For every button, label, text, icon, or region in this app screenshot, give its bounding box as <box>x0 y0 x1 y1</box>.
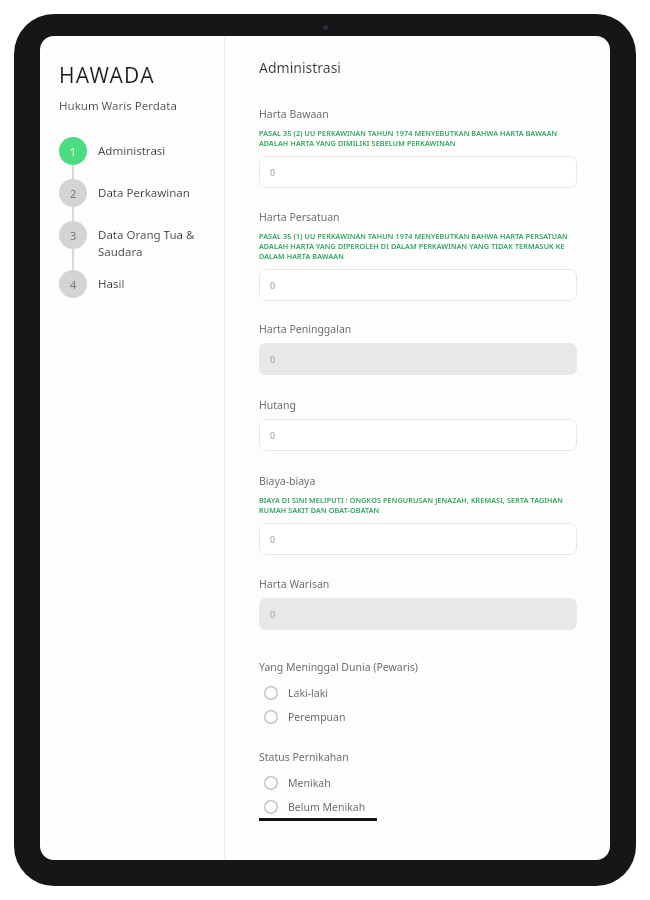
button[interactable]: Belum Menikah <box>259 800 577 814</box>
staticText: PASAL 35 (2) UU PERKAWINAN TAHUN 1974 ME… <box>259 128 577 148</box>
staticText: Laki-laki <box>288 686 329 700</box>
staticText: PASAL 35 (1) UU PERKAWINAN TAHUN 1974 ME… <box>259 231 577 261</box>
staticText: Biaya-biaya <box>259 474 316 488</box>
staticText: Menikah <box>288 776 331 790</box>
staticText: Hutang <box>259 398 296 412</box>
button[interactable]: 3 <box>59 221 216 260</box>
staticText: Yang Meninggal Dunia (Pewaris) <box>259 660 418 674</box>
button[interactable]: 0 <box>259 523 577 555</box>
staticText: 0 <box>270 279 276 291</box>
staticText: 0 <box>270 608 276 620</box>
staticText: Harta Warisan <box>259 577 330 591</box>
staticText: Harta Peninggalan <box>259 322 352 336</box>
staticText: Harta Persatuan <box>259 210 340 224</box>
button[interactable]: 1 <box>59 137 216 165</box>
staticText: 4 <box>70 277 77 292</box>
button[interactable]: 2 <box>59 179 216 207</box>
staticText: Hasil <box>98 276 125 292</box>
button[interactable]: 0 <box>259 419 577 451</box>
staticText: Harta Bawaan <box>259 107 329 121</box>
staticText: 0 <box>270 353 276 365</box>
staticText: Status Pernikahan <box>259 750 349 764</box>
button[interactable]: 0 <box>259 156 577 188</box>
staticText: Hukum Waris Perdata <box>59 98 177 114</box>
staticText: BIAYA DI SINI MELIPUTI : ONGKOS PENGURUS… <box>259 495 577 515</box>
staticText: 1 <box>70 144 77 159</box>
button[interactable]: 0 <box>259 269 577 301</box>
button[interactable]: Perempuan <box>259 710 577 724</box>
staticText: 2 <box>70 186 77 201</box>
staticText: 0 <box>270 533 276 545</box>
staticText: Data Perkawinan <box>98 185 190 201</box>
staticText: HAWADA <box>59 61 155 90</box>
staticText: 0 <box>270 166 276 178</box>
staticText: 0 <box>270 429 276 441</box>
staticText: 3 <box>70 228 77 243</box>
staticText: Administrasi <box>259 58 341 77</box>
staticText: Data Orang Tua & Saudara <box>98 227 195 260</box>
button[interactable]: Laki-laki <box>259 686 577 700</box>
button[interactable]: Menikah <box>259 776 577 790</box>
staticText: Administrasi <box>98 143 166 159</box>
staticText: Perempuan <box>288 710 346 724</box>
button[interactable]: 4 <box>59 270 216 298</box>
staticText: Belum Menikah <box>288 800 366 814</box>
